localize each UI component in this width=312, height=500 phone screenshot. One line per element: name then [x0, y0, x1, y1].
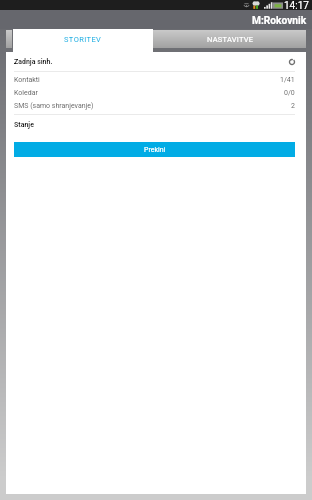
- button[interactable]: Prekini: [14, 142, 295, 157]
- staticText: Koledar: [14, 89, 38, 97]
- staticText: Prekini: [144, 146, 166, 154]
- staticText: NASTAVITVE: [207, 35, 254, 44]
- button[interactable]: STORITEV: [13, 29, 153, 52]
- staticText: 14:17: [284, 0, 309, 10]
- staticText: STORITEV: [64, 35, 102, 44]
- staticText: 2: [291, 102, 295, 110]
- button[interactable]: Kontakti: [14, 73, 295, 86]
- button[interactable]: NASTAVITVE: [153, 30, 306, 48]
- staticText: Kontakti: [14, 76, 40, 84]
- staticText: SMS (samo shranjevanje): [14, 102, 94, 110]
- button[interactable]: Koledar: [14, 86, 295, 99]
- staticText: Zadnja sinh.: [14, 58, 53, 66]
- staticText: 1/41: [280, 76, 295, 84]
- other: Sync status: [288, 58, 296, 66]
- staticText: M:Rokovnik: [252, 15, 307, 27]
- staticText: 0/0: [284, 89, 295, 97]
- button[interactable]: SMS (samo shranjevanje): [14, 99, 295, 112]
- staticText: Stanje: [14, 121, 34, 129]
